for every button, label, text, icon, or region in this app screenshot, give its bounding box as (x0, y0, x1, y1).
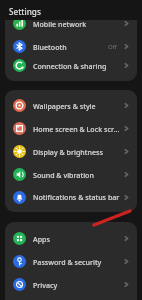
staticText: Sound & vibration (33, 170, 122, 180)
button[interactable]: Connection & sharing (5, 58, 137, 73)
staticText: Password & security (33, 257, 122, 267)
staticText: Privacy (33, 280, 122, 290)
staticText: Apps (33, 234, 122, 244)
other: Open Display & brightness (122, 147, 131, 156)
other: Open Privacy (122, 280, 131, 289)
button[interactable]: Sound & vibration (5, 163, 137, 186)
button[interactable]: Wallpapers & style (5, 94, 137, 117)
other: Open Notifications & status bar (122, 193, 131, 202)
staticText: Connection & sharing (33, 61, 122, 71)
other: Open Apps (122, 234, 131, 243)
button[interactable]: Privacy (5, 273, 137, 296)
staticText: Home screen & Lock screen (33, 124, 122, 134)
staticText: Wallpapers & style (33, 101, 122, 111)
button[interactable]: Home screen & Lock screen (5, 117, 137, 140)
staticText: Settings (9, 6, 41, 17)
other: Open Sound & vibration (122, 170, 131, 179)
other: Open Home screen & Lock screen (122, 124, 131, 133)
button[interactable]: Apps (5, 227, 137, 250)
other: Open Password & security (122, 257, 131, 266)
staticText: Display & brightness (33, 147, 122, 157)
button[interactable]: Mobile network (5, 20, 137, 35)
button[interactable]: Notifications & status bar (5, 186, 137, 208)
button[interactable]: Display & brightness (5, 140, 137, 163)
other: Open Bluetooth (122, 42, 131, 51)
staticText: Bluetooth (33, 42, 108, 52)
button[interactable]: Bluetooth (5, 35, 137, 58)
other: Open Connection & sharing (122, 61, 131, 70)
other: Open Wallpapers & style (122, 101, 131, 110)
button[interactable]: Password & security (5, 250, 137, 273)
staticText: Mobile network (33, 20, 122, 29)
staticText: Off (108, 43, 117, 51)
other: Open Mobile network (122, 20, 131, 28)
staticText: Notifications & status bar (33, 192, 122, 202)
